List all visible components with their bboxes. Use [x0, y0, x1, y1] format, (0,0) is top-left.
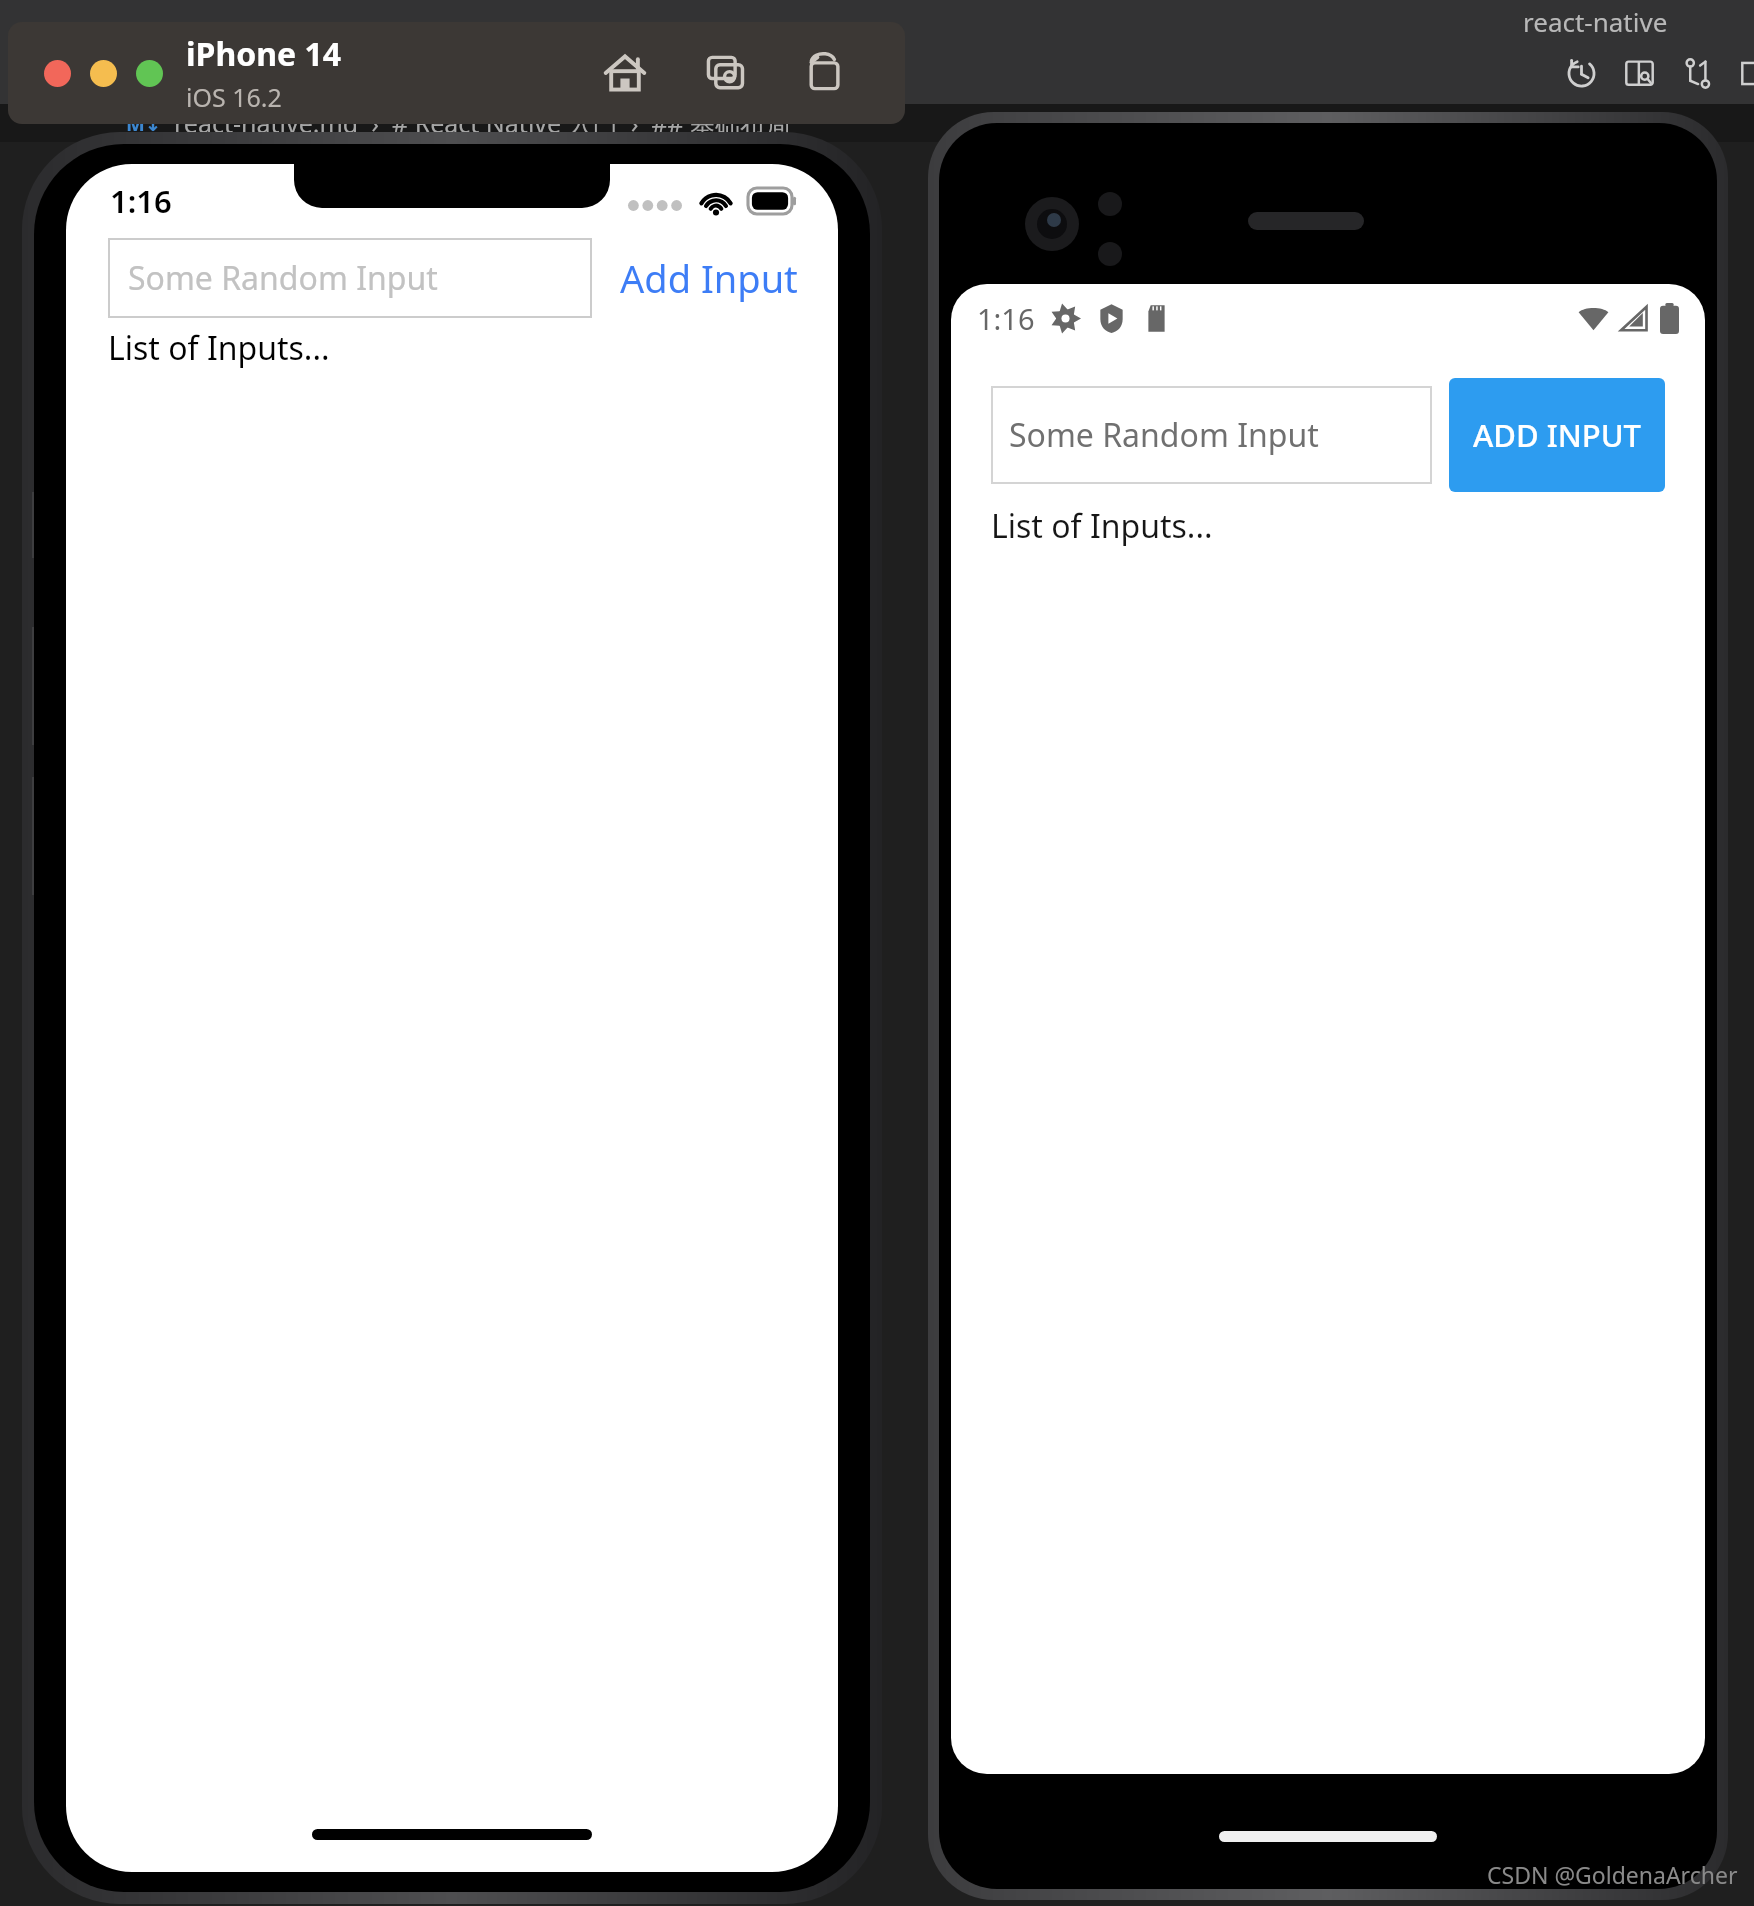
button[interactable]: Search in panel	[1614, 48, 1664, 98]
staticText: List of Inputs...	[991, 504, 1213, 548]
staticText: react-native	[1523, 4, 1668, 39]
staticText: 1:16	[110, 180, 172, 222]
button[interactable]: Zoom	[136, 60, 163, 87]
button[interactable]: Rotate	[797, 45, 853, 101]
staticText: List of Inputs...	[108, 326, 330, 370]
staticText: CSDN @GoldenaArcher	[1487, 1859, 1738, 1890]
button[interactable]: History	[1556, 48, 1606, 98]
staticText: 1:16	[977, 299, 1035, 338]
staticText: M↓	[126, 110, 162, 137]
staticText: Add Input	[620, 252, 798, 304]
button[interactable]: Some Random Input	[991, 386, 1432, 484]
staticText: iOS 16.2	[186, 80, 282, 114]
staticText: iPhone 14	[186, 32, 342, 76]
staticText: Some Random Input	[1009, 413, 1319, 457]
button[interactable]: Some Random Input	[108, 238, 592, 318]
button[interactable]: Split editor	[1730, 48, 1754, 98]
staticText: ADD INPUT	[1473, 414, 1641, 456]
button[interactable]: Source control	[1672, 48, 1722, 98]
button[interactable]: Add Input	[620, 252, 798, 304]
button[interactable]: Minimize	[90, 60, 117, 87]
button[interactable]: ADD INPUT	[1449, 378, 1665, 492]
button[interactable]: Close	[44, 60, 71, 87]
button[interactable]: Home	[597, 45, 653, 101]
staticText: Some Random Input	[128, 256, 438, 300]
button[interactable]: Screenshot	[697, 45, 753, 101]
staticText: react-native.md › # React Native 入门 › ##…	[174, 106, 791, 140]
